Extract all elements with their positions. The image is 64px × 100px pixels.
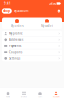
- staticText: Settings: [9, 57, 20, 60]
- staticText: My orders: [10, 24, 23, 28]
- button[interactable]: My orders: [2, 17, 32, 29]
- button[interactable]: Cart: [32, 87, 48, 100]
- button[interactable]: Account: [48, 87, 64, 100]
- staticText: My profile: [9, 32, 23, 35]
- button[interactable]: Coupons: [2, 49, 62, 55]
- staticText: 9:41: [4, 2, 11, 5]
- button[interactable]: My profile: [2, 31, 62, 36]
- staticText: My Account: [14, 9, 29, 13]
- staticText: Payments: [9, 44, 21, 48]
- staticText: Home: [6, 96, 10, 98]
- button[interactable]: Payments: [2, 43, 62, 49]
- button[interactable]: Settings: [2, 55, 62, 61]
- staticText: Addresses: [9, 38, 23, 41]
- staticText: Account: [53, 96, 59, 98]
- button[interactable]: Home: [0, 87, 16, 100]
- button[interactable]: Addresses: [2, 37, 62, 43]
- button[interactable]: My wallet: [32, 17, 62, 29]
- staticText: Browse: [21, 96, 27, 98]
- staticText: Cart: [38, 96, 41, 98]
- staticText: Coupons: [9, 50, 22, 54]
- staticText: shop: [3, 9, 10, 13]
- button[interactable]: Notifications: [56, 8, 62, 14]
- staticText: My wallet: [41, 24, 53, 28]
- button[interactable]: Browse: [16, 87, 32, 100]
